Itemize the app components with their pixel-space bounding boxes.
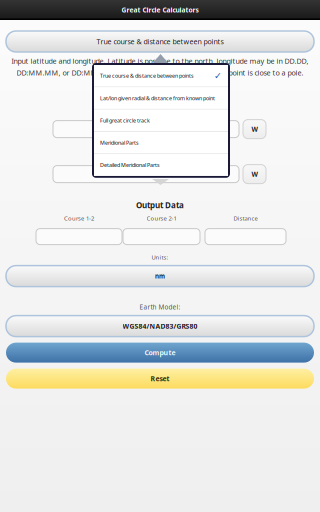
button[interactable]: Full great circle track xyxy=(94,110,228,131)
staticText: Detailed Meridional Parts xyxy=(100,161,160,169)
staticText: Units: xyxy=(151,253,168,261)
staticText: W xyxy=(251,125,257,134)
staticText: DD:MM.MM, or DD:MM:SS.S format. Accuracy… xyxy=(16,68,303,78)
staticText: Input latitude and longitude. Latitude i… xyxy=(11,56,308,66)
button[interactable]: True course & distance between points xyxy=(6,31,314,52)
button[interactable]: Reset xyxy=(6,369,314,389)
staticText: Compute xyxy=(144,348,175,357)
staticText: Earth Model: xyxy=(139,303,180,311)
staticText: True course & distance between points xyxy=(96,37,223,46)
button[interactable]: Detailed Meridional Parts xyxy=(94,154,228,176)
staticText: Distance xyxy=(233,214,257,222)
button[interactable]: Compute xyxy=(6,343,314,363)
button[interactable]: nm xyxy=(6,266,314,287)
staticText: Meridional Parts xyxy=(100,139,139,146)
staticText: Reset xyxy=(150,374,169,383)
button[interactable]: Lat/lon given radial & distance from kno… xyxy=(94,87,228,109)
button[interactable]: WGS84/NAD83/GRS80 xyxy=(6,316,314,337)
staticText: nm xyxy=(155,272,165,280)
staticText: True course & distance between points xyxy=(100,72,194,79)
staticText: W xyxy=(251,170,257,179)
button[interactable]: Hemisphere W xyxy=(243,120,266,139)
button[interactable]: True course & distance between points xyxy=(94,65,228,87)
staticText: Course 1-2 xyxy=(64,214,94,222)
staticText: Full great circle track xyxy=(100,117,150,124)
staticText: ✓ xyxy=(214,70,222,81)
staticText: Great Circle Calculators xyxy=(121,5,198,15)
button[interactable]: Meridional Parts xyxy=(94,132,228,153)
staticText: Course 2-1 xyxy=(146,214,176,222)
staticText: Lat/lon given radial & distance from kno… xyxy=(100,94,215,102)
staticText: WGS84/NAD83/GRS80 xyxy=(122,321,197,331)
button[interactable]: Hemisphere W xyxy=(243,165,266,184)
staticText: Output Data xyxy=(136,200,184,211)
